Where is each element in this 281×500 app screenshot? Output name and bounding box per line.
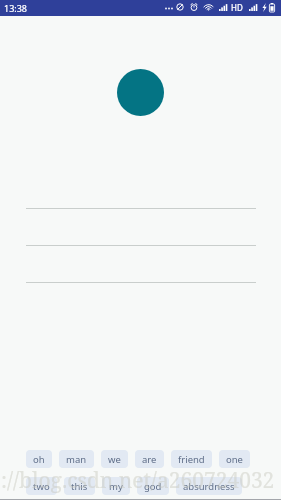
button[interactable]: god bbox=[137, 477, 169, 495]
button[interactable]: man bbox=[59, 450, 94, 468]
staticText: oh bbox=[33, 453, 45, 466]
staticText: 13:38 bbox=[4, 2, 28, 14]
staticText: one bbox=[226, 453, 243, 466]
staticText: this bbox=[71, 480, 88, 493]
staticText: absurdness bbox=[183, 480, 235, 493]
staticText: god bbox=[144, 480, 162, 493]
button[interactable]: Profile image bbox=[117, 69, 164, 116]
button[interactable]: we bbox=[101, 450, 128, 468]
staticText: ://blog.csdn.net/a260724032 bbox=[1, 466, 275, 495]
staticText: my bbox=[109, 480, 123, 493]
staticText: are bbox=[142, 453, 157, 466]
button[interactable]: one bbox=[219, 450, 250, 468]
button[interactable]: this bbox=[64, 477, 95, 495]
staticText: HD bbox=[231, 2, 243, 13]
staticText: we bbox=[108, 453, 121, 466]
staticText: friend bbox=[178, 453, 205, 466]
button[interactable]: oh bbox=[26, 450, 52, 468]
staticText: man bbox=[66, 453, 87, 466]
button[interactable]: friend bbox=[171, 450, 212, 468]
button[interactable]: my bbox=[102, 477, 130, 495]
button[interactable]: are bbox=[135, 450, 164, 468]
button[interactable]: absurdness bbox=[176, 477, 242, 495]
staticText: two bbox=[33, 480, 50, 493]
button[interactable]: two bbox=[26, 477, 57, 495]
